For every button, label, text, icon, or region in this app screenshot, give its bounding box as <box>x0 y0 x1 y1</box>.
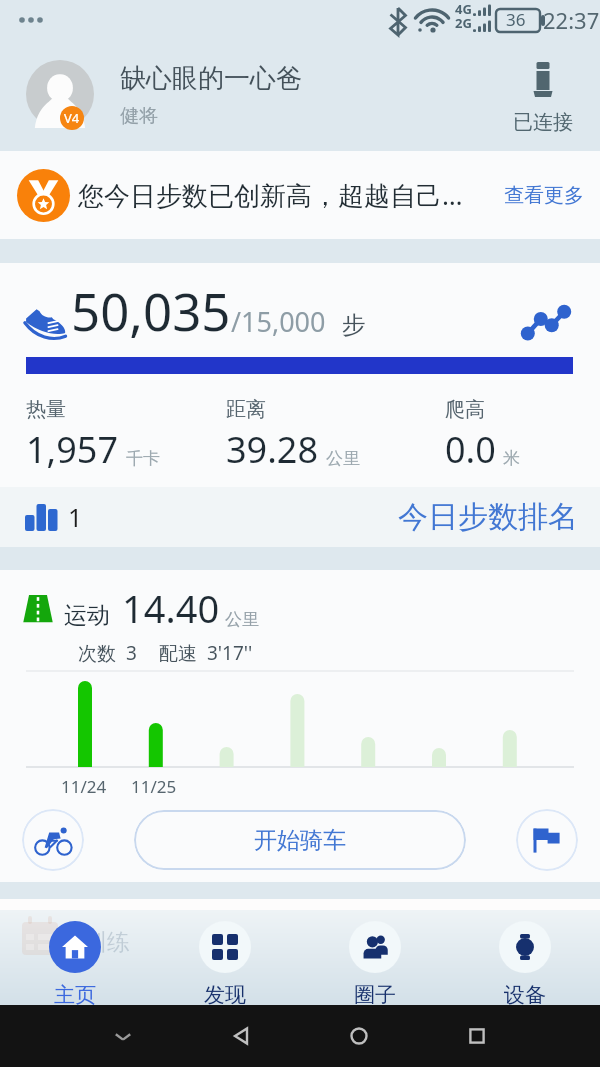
other: Medal <box>17 169 70 222</box>
staticText: /15,000 <box>231 303 326 340</box>
staticText: 4G <box>455 0 472 18</box>
staticText: 配速 3'17'' <box>159 640 253 666</box>
button[interactable]: 发现 <box>150 910 300 1005</box>
staticText: 1,957 <box>26 425 119 474</box>
staticText: 千卡 <box>126 448 160 469</box>
button[interactable]: 设备 <box>450 910 600 1005</box>
button[interactable]: Recents <box>462 1021 492 1051</box>
staticText: 距离 <box>226 397 266 422</box>
button[interactable]: Home <box>344 1021 374 1051</box>
staticText: 次数 3 <box>78 640 137 666</box>
button[interactable]: 开始骑车 <box>134 810 466 870</box>
staticText: 设备 <box>504 982 546 1005</box>
staticText: 训练 <box>84 928 130 957</box>
staticText: 健将 <box>120 104 158 128</box>
staticText: 39.28 <box>226 425 319 474</box>
staticText: 今日步数排名 <box>398 498 578 536</box>
staticText: 发现 <box>204 982 246 1005</box>
staticText: 米 <box>503 448 520 469</box>
staticText: 主页 <box>54 982 96 1005</box>
staticText: 公里 <box>225 609 259 630</box>
staticText: 已连接 <box>513 110 573 135</box>
staticText: 36 <box>506 8 526 31</box>
staticText: 运动 <box>64 601 110 630</box>
button[interactable]: 1 <box>0 487 600 547</box>
staticText: 1 <box>68 500 83 534</box>
staticText: 22:37 <box>543 5 600 35</box>
staticText: 50,035 <box>71 276 231 345</box>
staticText: 缺心眼的一心爸 <box>120 62 302 95</box>
staticText: 热量 <box>26 397 66 422</box>
staticText: 公里 <box>326 448 360 469</box>
staticText: 0.0 <box>445 425 496 474</box>
staticText: 11/24 <box>61 775 107 798</box>
staticText: 爬高 <box>445 397 485 422</box>
staticText: 圈子 <box>354 982 396 1005</box>
button[interactable]: 圈子 <box>300 910 450 1005</box>
button[interactable]: Hide keyboard <box>108 1021 138 1051</box>
staticText: 您今日步数已创新高，超越自己… <box>78 177 463 213</box>
button[interactable]: Flag <box>516 809 578 871</box>
button[interactable]: Back <box>226 1021 256 1051</box>
staticText: 14.40 <box>122 582 220 634</box>
button[interactable]: 主页 <box>0 910 150 1005</box>
staticText: 11/25 <box>131 775 177 798</box>
button[interactable]: Step trend chart <box>520 293 572 345</box>
staticText: V4 <box>64 109 80 127</box>
button[interactable]: Medal <box>0 151 600 239</box>
button[interactable]: Cycling <box>22 809 84 871</box>
staticText: 步 <box>342 310 366 340</box>
staticText: 查看更多 <box>504 183 584 208</box>
button[interactable]: Connected device <box>513 62 573 135</box>
staticText: 2G <box>455 14 472 32</box>
staticText: 开始骑车 <box>254 826 346 855</box>
